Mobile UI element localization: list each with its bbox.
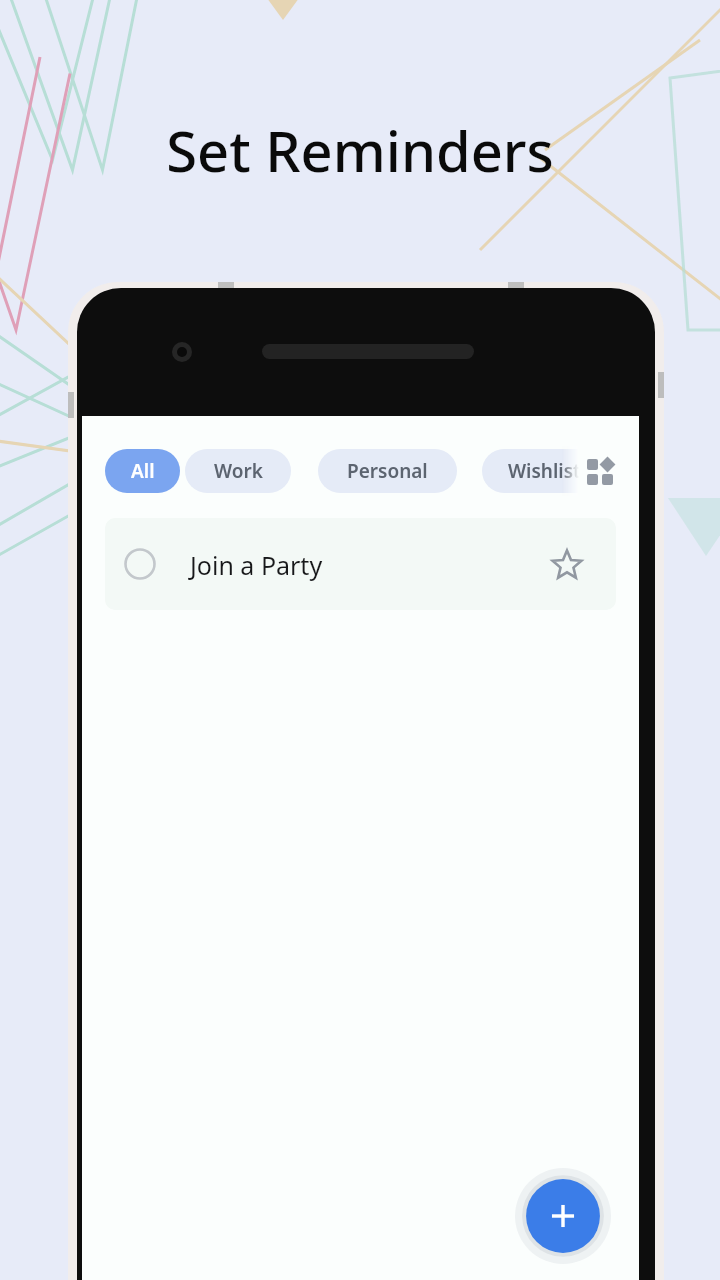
button[interactable]: Wishlist [482, 449, 607, 493]
button[interactable]: Work [185, 449, 291, 493]
button[interactable]: Mark complete [124, 548, 156, 580]
button[interactable]: Favorite [549, 547, 585, 583]
staticText: Personal [347, 458, 428, 484]
staticText: Wishlist [508, 458, 581, 484]
staticText: Set Reminders [0, 112, 720, 1280]
button[interactable]: Switch to grid view [576, 446, 624, 494]
button[interactable]: Add reminder [515, 1168, 611, 1264]
button[interactable]: Personal [318, 449, 457, 493]
button[interactable]: Mark complete [105, 518, 616, 610]
staticText: All [131, 458, 155, 484]
staticText: Work [214, 458, 263, 484]
button[interactable]: All [105, 449, 180, 493]
staticText: Join a Party [190, 548, 323, 582]
